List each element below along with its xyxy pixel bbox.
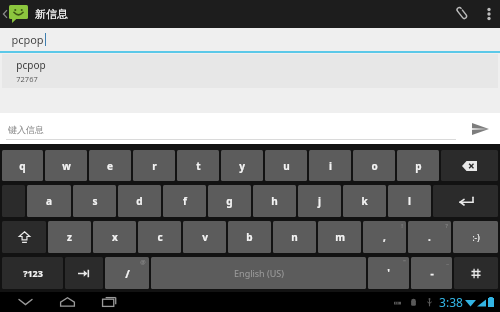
- staticText: a: [46, 194, 52, 208]
- staticText: n: [291, 230, 298, 244]
- button[interactable]: Back: [14, 293, 36, 311]
- staticText: y: [239, 159, 245, 173]
- staticText: s: [92, 194, 98, 208]
- button[interactable]: k: [343, 185, 386, 217]
- button[interactable]: a: [27, 185, 71, 217]
- button[interactable]: Home: [56, 293, 78, 311]
- staticText: j: [318, 194, 321, 208]
- staticText: ": [403, 258, 406, 266]
- button[interactable]: Recent apps: [98, 293, 120, 311]
- staticText: v: [202, 230, 208, 244]
- staticText: e: [107, 159, 113, 173]
- button[interactable]: Back: [1, 7, 9, 21]
- staticText: p: [415, 159, 422, 173]
- button[interactable]: f: [163, 185, 206, 217]
- staticText: l: [408, 194, 411, 208]
- staticText: u: [283, 159, 290, 173]
- button[interactable]: b: [228, 221, 271, 253]
- button[interactable]: Change keyboard: [454, 257, 498, 289]
- staticText: z: [67, 230, 72, 244]
- staticText: c: [157, 230, 163, 244]
- button[interactable]: i: [309, 150, 351, 181]
- staticText: ?: [445, 222, 448, 230]
- button[interactable]: n: [273, 221, 316, 253]
- button[interactable]: r: [133, 150, 175, 181]
- button[interactable]: ?123: [2, 257, 63, 289]
- button[interactable]: ': [368, 257, 409, 289]
- staticText: k: [361, 194, 368, 208]
- button[interactable]: English (US): [151, 257, 366, 289]
- staticText: g: [226, 194, 233, 208]
- staticText: .: [428, 230, 431, 244]
- button[interactable]: m: [318, 221, 361, 253]
- staticText: q: [19, 159, 26, 173]
- button[interactable]: Delete: [441, 150, 498, 181]
- staticText: 新信息: [35, 7, 68, 21]
- button[interactable]: s: [73, 185, 116, 217]
- button[interactable]: c: [138, 221, 181, 253]
- button[interactable]: ,: [363, 221, 406, 253]
- button[interactable]: Send: [466, 115, 494, 143]
- staticText: pcpop: [11, 32, 44, 47]
- button[interactable]: Tab: [65, 257, 103, 289]
- button[interactable]: More options: [478, 0, 500, 28]
- button[interactable]: t: [177, 150, 219, 181]
- button[interactable]: g: [208, 185, 251, 217]
- staticText: English (US): [234, 267, 284, 279]
- button[interactable]: j: [298, 185, 341, 217]
- button[interactable]: /: [105, 257, 149, 289]
- staticText: m: [335, 230, 345, 244]
- staticText: /: [125, 266, 130, 281]
- button[interactable]: 键入信息: [8, 118, 452, 140]
- button[interactable]: d: [118, 185, 161, 217]
- button[interactable]: :-): [453, 221, 498, 253]
- staticText: _: [446, 258, 449, 266]
- button[interactable]: h: [253, 185, 296, 217]
- staticText: ,: [383, 230, 386, 244]
- button[interactable]: o: [353, 150, 395, 181]
- staticText: :-): [472, 232, 480, 243]
- button[interactable]: y: [221, 150, 263, 181]
- staticText: w: [62, 159, 71, 173]
- staticText: 72767: [16, 74, 38, 84]
- button[interactable]: z: [48, 221, 91, 253]
- staticText: x: [112, 230, 118, 244]
- button[interactable]: Attach: [448, 0, 478, 28]
- staticText: 3:38: [439, 294, 463, 310]
- staticText: f: [183, 194, 187, 208]
- button[interactable]: p: [397, 150, 439, 181]
- button[interactable]: l: [388, 185, 431, 217]
- staticText: @: [140, 258, 146, 266]
- staticText: ?123: [23, 267, 43, 279]
- staticText: -: [430, 266, 434, 280]
- button[interactable]: Shift: [2, 221, 46, 253]
- staticText: !: [401, 222, 403, 230]
- button[interactable]: q: [2, 150, 43, 181]
- staticText: pcpop: [16, 58, 46, 72]
- staticText: b: [246, 230, 253, 244]
- button[interactable]: e: [89, 150, 131, 181]
- button[interactable]: .: [408, 221, 451, 253]
- button[interactable]: v: [183, 221, 226, 253]
- staticText: i: [329, 159, 332, 173]
- button[interactable]: x: [93, 221, 136, 253]
- button[interactable]: w: [45, 150, 87, 181]
- staticText: o: [371, 159, 378, 173]
- staticText: r: [152, 159, 157, 173]
- button[interactable]: pcpop: [0, 28, 500, 51]
- staticText: t: [196, 159, 201, 173]
- staticText: 键入信息: [8, 124, 44, 135]
- button[interactable]: u: [265, 150, 307, 181]
- staticText: h: [271, 194, 278, 208]
- staticText: ': [387, 266, 390, 280]
- button[interactable]: -: [411, 257, 452, 289]
- button[interactable]: Enter: [433, 185, 498, 217]
- staticText: d: [136, 194, 143, 208]
- button[interactable]: pcpop: [2, 54, 498, 88]
